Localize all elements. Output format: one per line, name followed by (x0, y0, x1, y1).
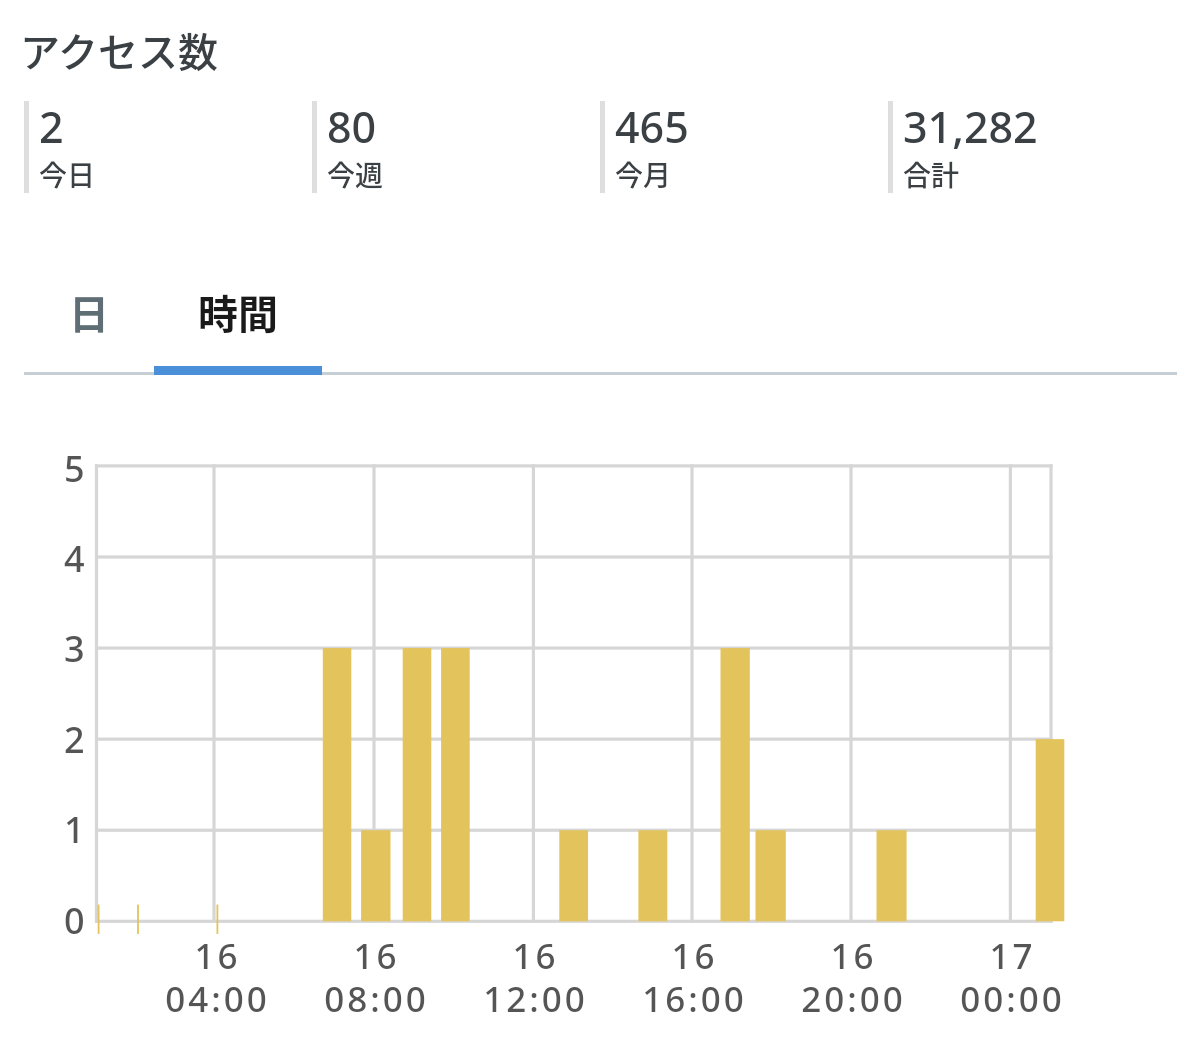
staticText: 31,282 (903, 97, 1038, 156)
staticText: 12:00 (483, 975, 588, 1015)
staticText: 今日 (39, 154, 96, 195)
staticText: 20:00 (801, 975, 906, 1015)
staticText: 日 (69, 283, 109, 341)
staticText: 2 (39, 97, 64, 156)
staticText: 16 (353, 932, 400, 972)
staticText: 0 (64, 896, 85, 945)
staticText: 00:00 (960, 975, 1065, 1015)
staticText: 16 (830, 932, 877, 972)
staticText: 16:00 (642, 975, 747, 1015)
staticText: 5 (64, 444, 85, 493)
staticText: 16 (194, 932, 241, 972)
staticText: 17 (989, 932, 1036, 972)
staticText: 08:00 (324, 975, 429, 1015)
staticText: アクセス数 (20, 21, 218, 79)
staticText: 時間 (198, 283, 278, 341)
staticText: 04:00 (165, 975, 270, 1015)
staticText: 3 (64, 624, 85, 673)
staticText: 465 (615, 97, 689, 156)
staticText: 16 (671, 932, 718, 972)
staticText: 今月 (615, 154, 672, 195)
button[interactable]: 日 (7, 268, 171, 364)
staticText: 合計 (903, 154, 960, 195)
staticText: 今週 (327, 154, 384, 195)
staticText: 16 (512, 932, 559, 972)
staticText: 2 (64, 715, 85, 764)
button[interactable]: 時間 (154, 268, 322, 364)
staticText: 1 (64, 805, 85, 854)
staticText: 80 (327, 97, 377, 156)
staticText: 4 (64, 534, 85, 583)
